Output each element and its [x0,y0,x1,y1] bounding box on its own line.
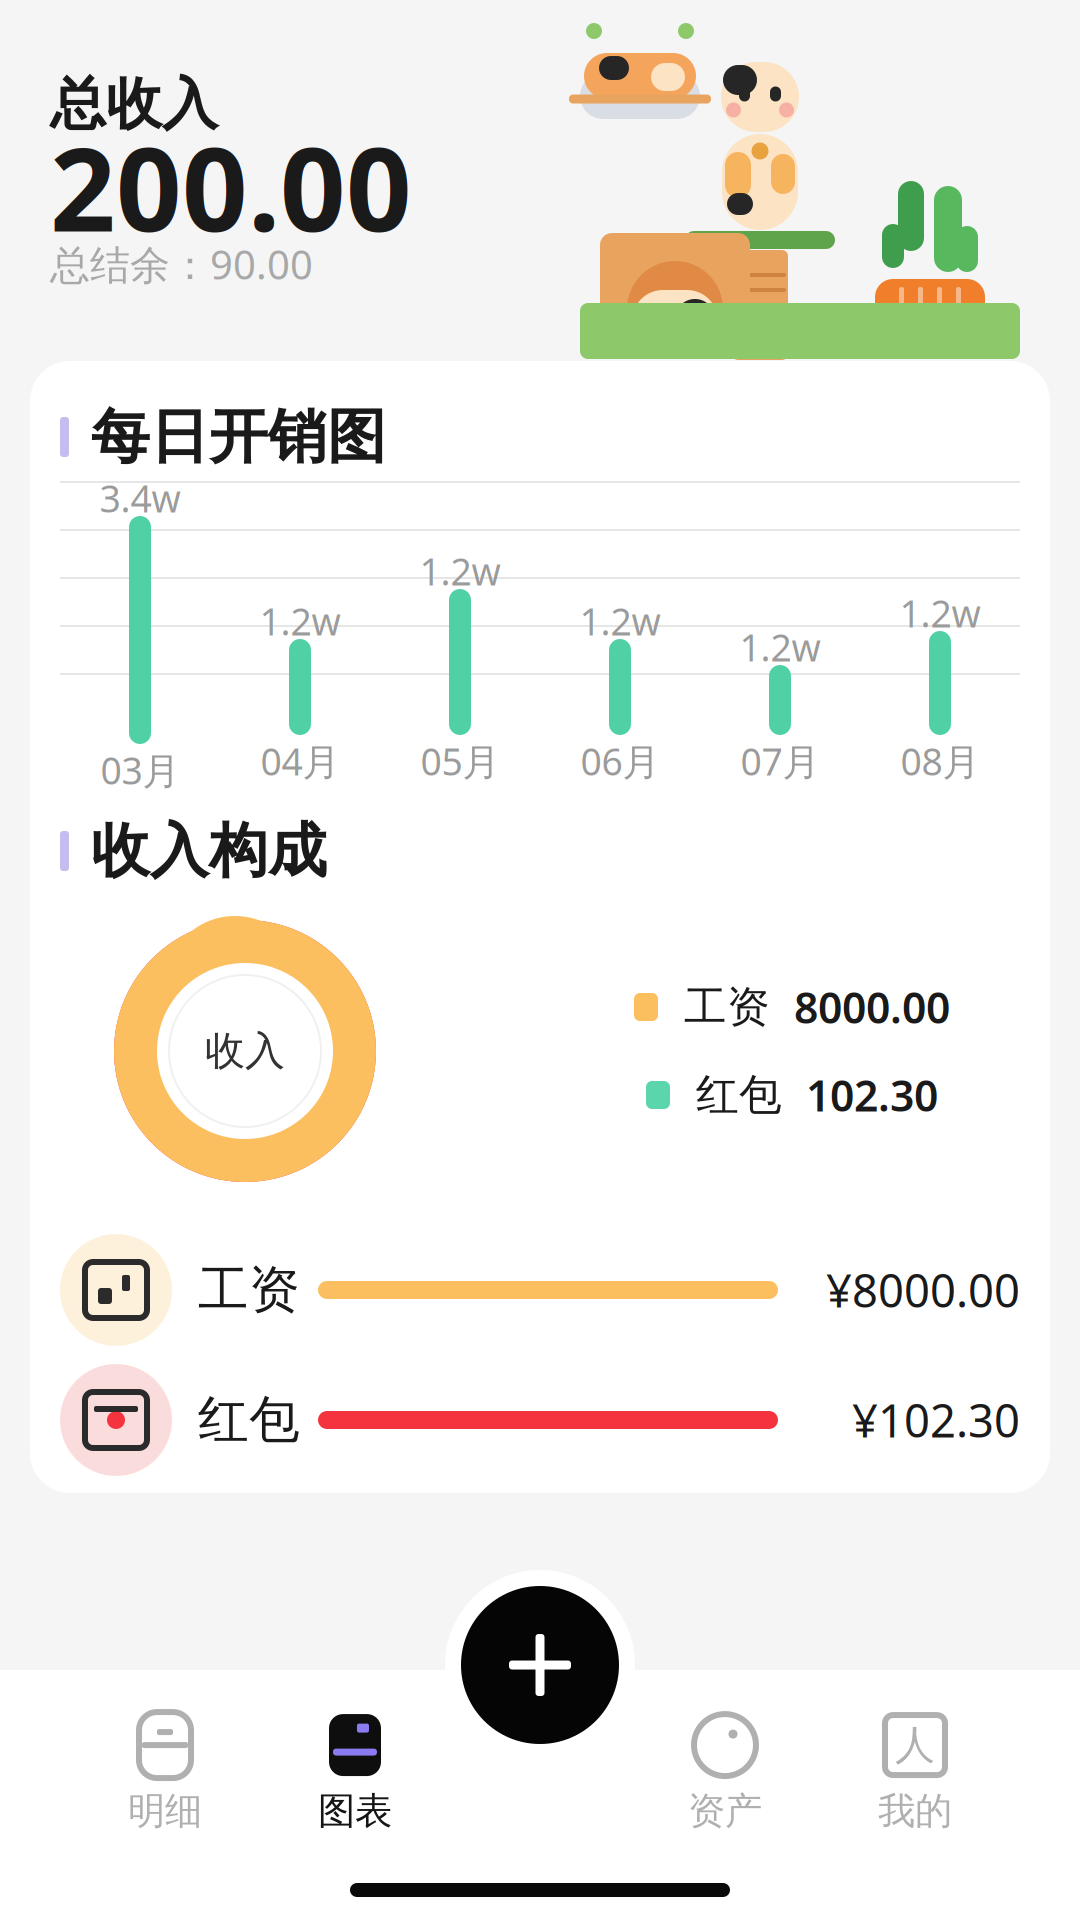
staticText: 1.2w [579,596,660,646]
staticText: 每日开销图 [91,401,386,473]
staticText: 人 [895,1720,935,1770]
staticText: 总收入 [50,70,218,138]
staticText: 3.4w [99,473,180,523]
staticText: 07月 [740,736,819,786]
staticText: 红包 [198,1389,300,1451]
staticText: 200.00 [50,111,412,263]
staticText: 我的 [878,1788,952,1834]
button[interactable]: 工资 [60,1225,1020,1355]
staticText: 04月 [260,736,339,786]
staticText: 红包 [696,1069,782,1121]
button[interactable]: 人 [820,1702,1010,1842]
staticText: 图表 [318,1788,392,1834]
staticText: 1.2w [259,596,340,646]
button[interactable]: 明细 [70,1702,260,1842]
staticText: 工资 [198,1259,300,1321]
button[interactable]: Add transaction [461,1586,619,1744]
staticText: 1.2w [899,588,980,638]
staticText: ¥8000.00 [826,1260,1020,1320]
button[interactable]: 红包 [60,1355,1020,1485]
staticText: 08月 [900,736,979,786]
staticText: 05月 [420,736,499,786]
button[interactable]: 资产 [630,1702,820,1842]
staticText: 1.2w [419,546,500,596]
staticText: 06月 [580,736,659,786]
staticText: 工资 [684,981,770,1033]
staticText: 1.2w [739,622,820,672]
staticText: 03月 [100,745,179,795]
staticText: 8000.00 [794,979,950,1035]
button[interactable]: 图表 [260,1702,450,1842]
staticText: 收入构成 [91,815,327,887]
staticText: ¥102.30 [852,1390,1020,1450]
staticText: 总结余：90.00 [50,237,313,290]
staticText: 收入 [205,1026,285,1075]
staticText: 资产 [688,1788,762,1834]
staticText: 102.30 [806,1067,938,1123]
staticText: 明细 [128,1788,202,1834]
